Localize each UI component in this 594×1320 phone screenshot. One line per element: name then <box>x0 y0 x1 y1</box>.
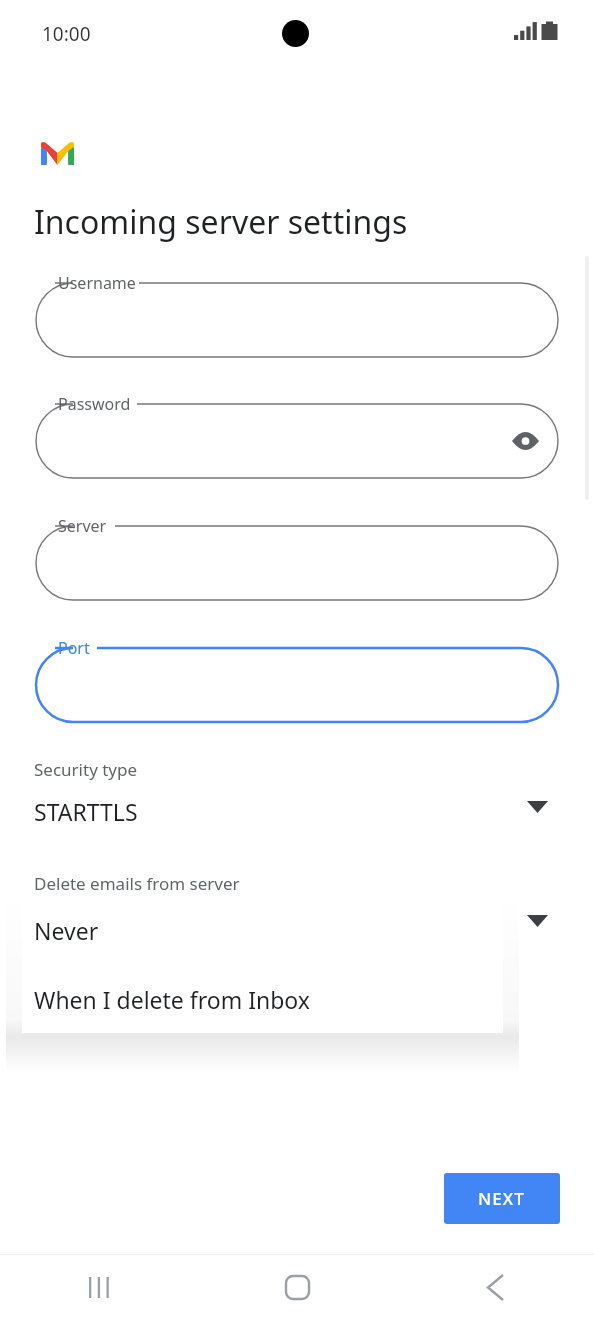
button[interactable]: Username <box>36 283 558 357</box>
staticText: Username <box>58 272 136 294</box>
staticText: Server <box>58 515 107 537</box>
staticText: Port <box>58 637 90 659</box>
staticText: STARTTLS <box>34 796 138 827</box>
staticText: 10:00 <box>42 21 91 47</box>
button[interactable]: When I delete from Inbox <box>22 965 503 1033</box>
staticText: Delete emails from server <box>34 872 240 895</box>
button[interactable]: Security type <box>0 758 594 834</box>
staticText: Incoming server settings <box>34 200 408 244</box>
button[interactable]: NEXT <box>444 1173 560 1224</box>
button[interactable]: Back <box>396 1254 594 1320</box>
button[interactable]: Server <box>36 526 558 600</box>
button[interactable]: Delete emails from server <box>0 872 594 948</box>
button[interactable]: Home <box>198 1254 396 1320</box>
button[interactable]: Password <box>36 404 558 478</box>
staticText: Security type <box>34 758 138 781</box>
staticText: Never <box>34 915 99 946</box>
staticText: When I delete from Inbox <box>34 984 310 1015</box>
staticText: Password <box>58 393 131 415</box>
button[interactable]: Port <box>36 648 558 722</box>
button[interactable]: Recents <box>0 1254 198 1320</box>
staticText: NEXT <box>478 1187 526 1210</box>
button[interactable]: Never <box>22 896 503 965</box>
button[interactable]: Show password <box>503 419 547 463</box>
